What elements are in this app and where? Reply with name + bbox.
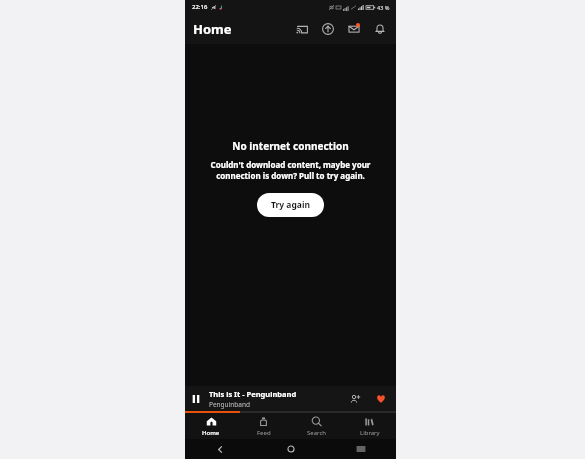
button[interactable]: Cast: [292, 19, 312, 39]
button[interactable]: Pause: [185, 388, 207, 410]
button[interactable]: Upload: [318, 19, 338, 39]
staticText: 22:16: [192, 3, 208, 11]
staticText: Penguinband: [209, 400, 250, 409]
button[interactable]: Messages: [344, 19, 364, 39]
button[interactable]: Try again: [257, 193, 324, 217]
button[interactable]: Recent apps: [326, 439, 396, 459]
button[interactable]: Search: [290, 413, 343, 439]
staticText: Home: [202, 429, 220, 437]
staticText: No internet connection: [232, 139, 349, 153]
staticText: Try again: [271, 199, 310, 211]
button[interactable]: Home: [185, 413, 237, 439]
staticText: Home: [193, 20, 232, 38]
staticText: Search: [307, 429, 326, 437]
staticText: 43 %: [377, 4, 390, 11]
button[interactable]: Library: [343, 413, 396, 439]
button[interactable]: Home: [256, 439, 326, 459]
staticText: Feed: [257, 429, 271, 437]
button[interactable]: Back: [185, 439, 256, 459]
staticText: Couldn't download content, maybe your co…: [192, 159, 389, 181]
button[interactable]: Like: [370, 388, 392, 410]
button[interactable]: Add to playlist: [344, 388, 366, 410]
button[interactable]: Pause: [185, 386, 396, 411]
button[interactable]: Notifications: [370, 19, 390, 39]
staticText: This is It - Penguinband: [209, 389, 297, 399]
button[interactable]: Feed: [237, 413, 290, 439]
staticText: Library: [360, 429, 380, 437]
